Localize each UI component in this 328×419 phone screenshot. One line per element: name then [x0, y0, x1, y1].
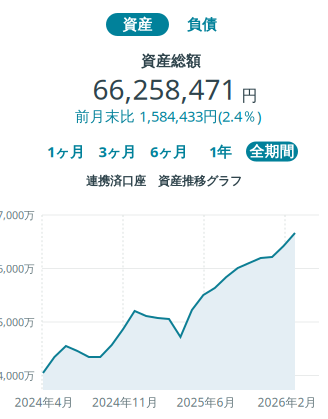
staticText: 円 — [241, 86, 257, 106]
button[interactable]: 6ヶ月 — [143, 141, 195, 161]
staticText: 5,000万 — [0, 315, 35, 329]
button[interactable]: 3ヶ月 — [91, 141, 143, 161]
staticText: 2025年6月 — [176, 394, 235, 410]
button[interactable]: 負債 — [177, 13, 227, 36]
staticText: 連携済口座 資産推移グラフ — [86, 174, 242, 188]
staticText: 6ヶ月 — [150, 142, 188, 161]
button[interactable]: 1年 — [194, 141, 246, 161]
staticText: 資産総額 — [141, 52, 201, 70]
staticText: 負債 — [187, 15, 217, 33]
button[interactable]: 1ヶ月 — [40, 141, 92, 161]
staticText: 全期間 — [249, 142, 294, 160]
staticText: 前月末比 1,584,433円(2.4％) — [75, 106, 261, 126]
staticText: 2024年4月 — [14, 394, 73, 410]
staticText: 66,258,471 — [92, 70, 236, 108]
staticText: 1ヶ月 — [47, 142, 85, 161]
button[interactable]: 全期間 — [246, 141, 298, 161]
staticText: 7,000万 — [0, 208, 35, 222]
button[interactable]: 資産 — [106, 13, 169, 36]
staticText: 2026年2月 — [257, 394, 316, 410]
staticText: 4,000万 — [0, 368, 35, 383]
staticText: 資産 — [122, 15, 152, 33]
staticText: 6,000万 — [0, 261, 35, 276]
staticText: 3ヶ月 — [98, 142, 136, 161]
staticText: 2024年11月 — [92, 394, 158, 410]
staticText: 1年 — [209, 142, 232, 161]
